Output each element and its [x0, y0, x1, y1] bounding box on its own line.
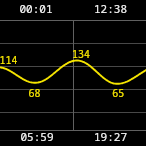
button[interactable]: Tide chart: [0, 0, 146, 146]
